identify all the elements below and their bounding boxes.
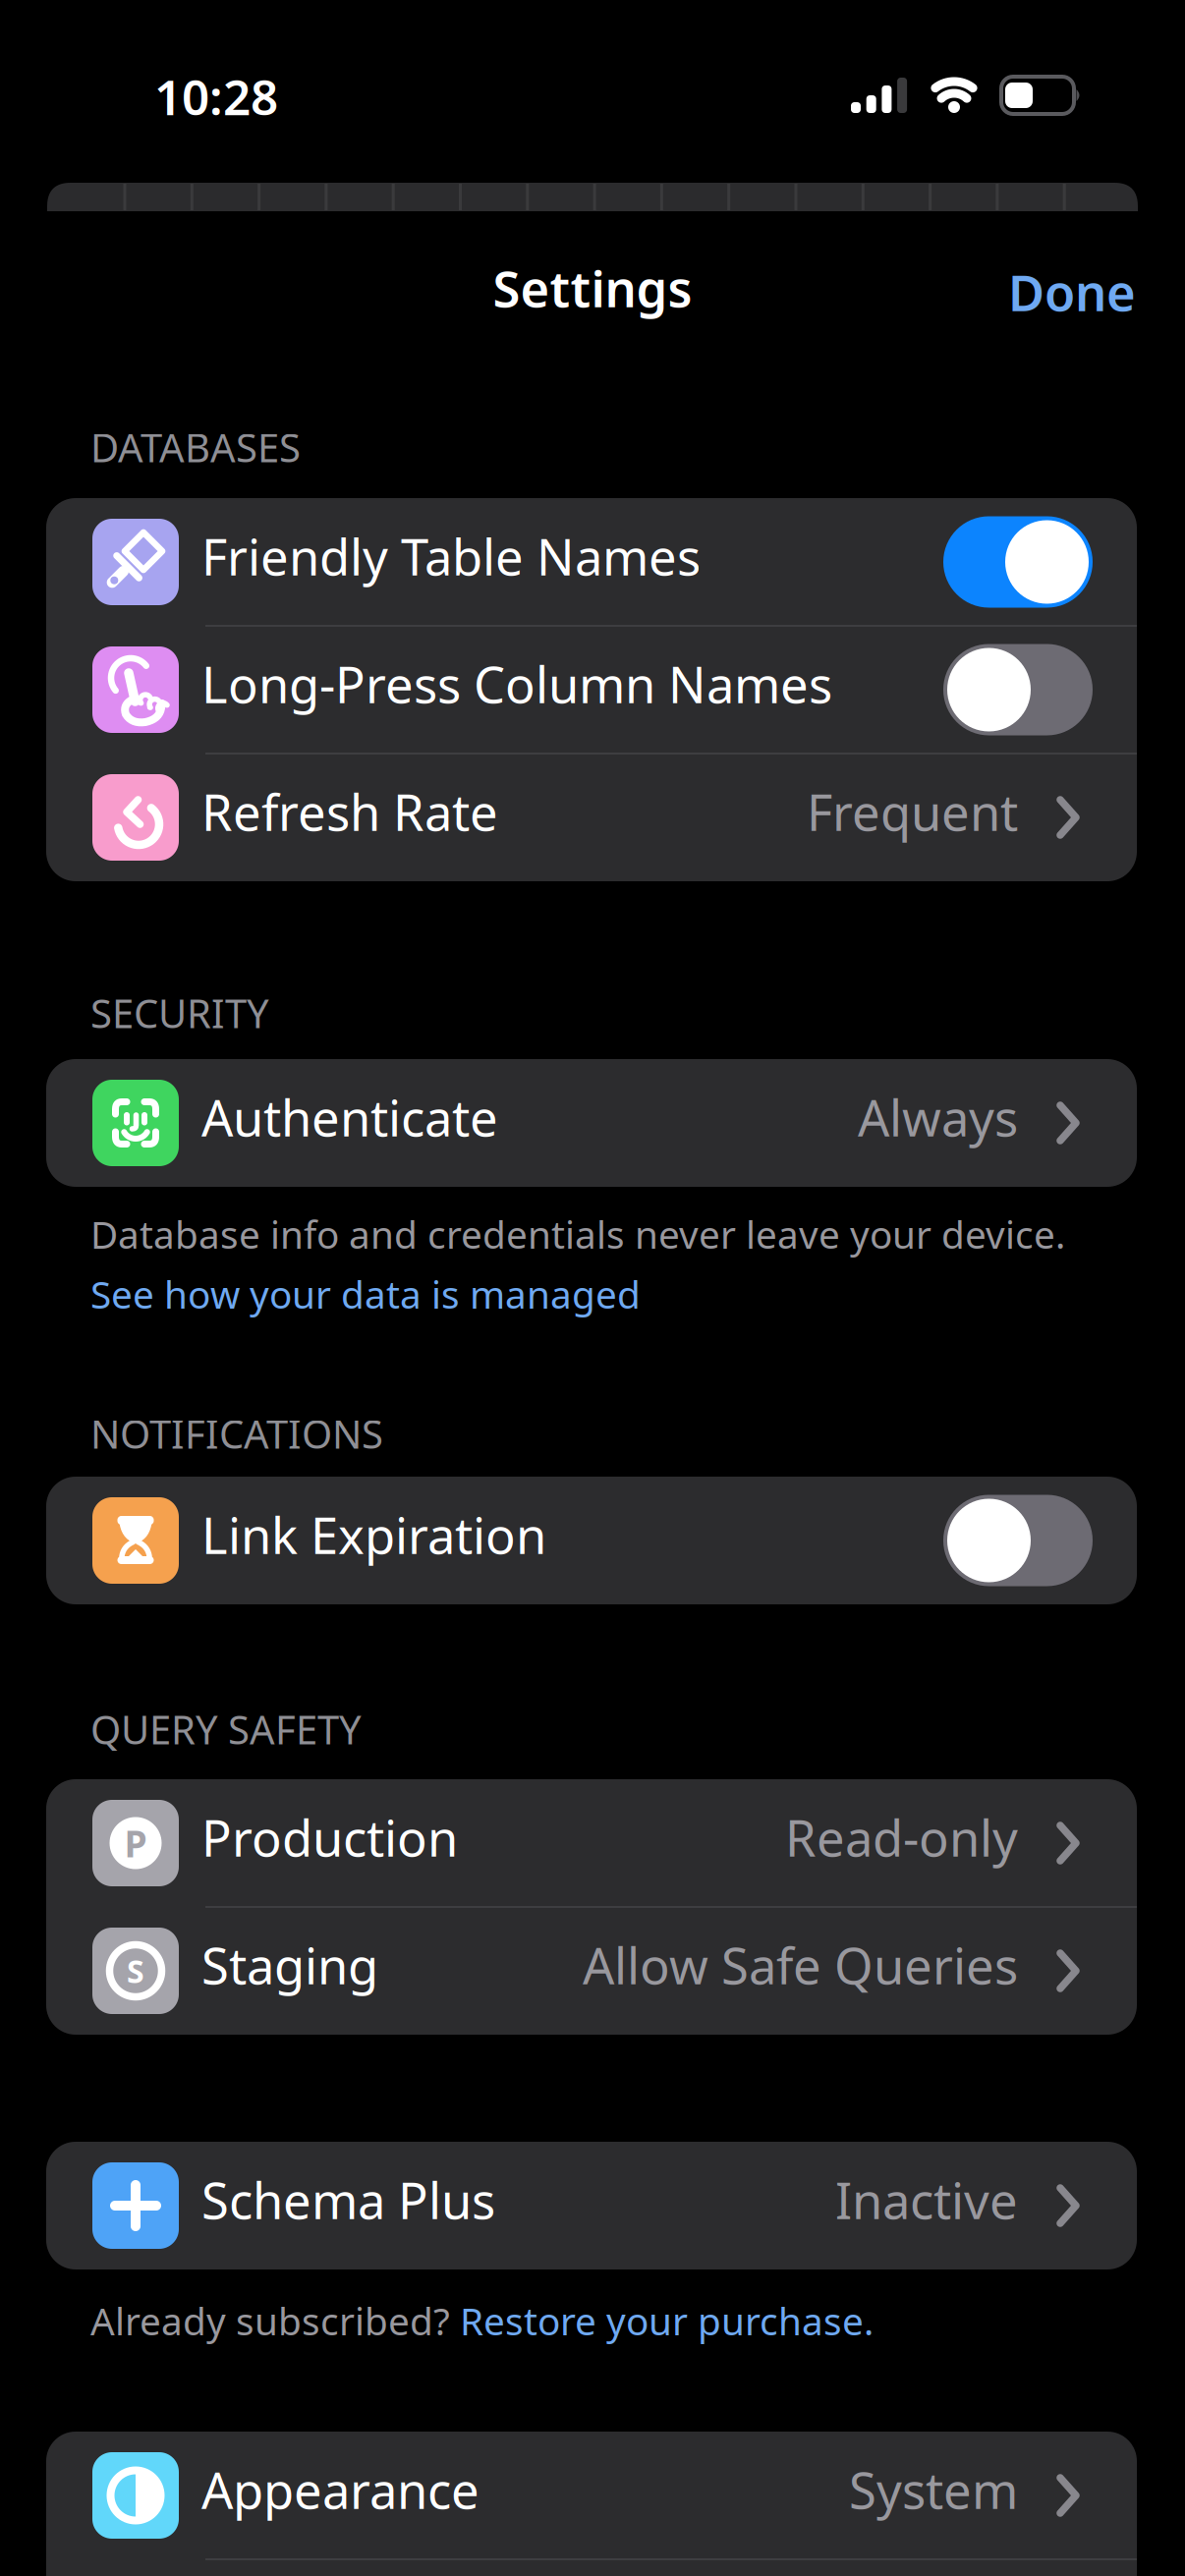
staticText: Authenticate bbox=[201, 1084, 498, 1150]
staticText: Done bbox=[1008, 259, 1136, 325]
staticText: SECURITY bbox=[90, 987, 269, 1039]
staticText: System bbox=[849, 2457, 1018, 2523]
button[interactable]: S bbox=[46, 1907, 1137, 2035]
button[interactable]: Long-Press Column Names bbox=[46, 626, 1137, 754]
staticText: Always bbox=[858, 1084, 1018, 1150]
staticText: Allow Safe Queries bbox=[583, 1932, 1018, 1998]
staticText: Frequent bbox=[807, 778, 1018, 845]
staticText: Database info and credentials never leav… bbox=[90, 1209, 1065, 1259]
button[interactable]: Refresh Rate bbox=[46, 754, 1137, 881]
staticText: Link Expiration bbox=[201, 1502, 546, 1568]
button[interactable]: Friendly Table Names bbox=[46, 498, 1137, 626]
staticText: Settings bbox=[493, 255, 692, 321]
button[interactable]: Link Expiration bbox=[46, 1477, 1137, 1604]
staticText: See how your data is managed bbox=[90, 1269, 641, 1319]
staticText: Staging bbox=[201, 1932, 378, 1998]
button[interactable]: P bbox=[46, 1779, 1137, 1907]
staticText: Appearance bbox=[201, 2457, 480, 2523]
button[interactable]: See how your data is managed bbox=[90, 1269, 641, 1319]
staticText: 10:28 bbox=[154, 64, 278, 128]
button[interactable]: Done bbox=[1008, 259, 1136, 325]
staticText: Production bbox=[201, 1804, 458, 1870]
staticText: Friendly Table Names bbox=[201, 523, 701, 589]
button[interactable]: Appearance bbox=[46, 2432, 1137, 2559]
button[interactable]: Authenticate bbox=[46, 1059, 1137, 1187]
staticText: Inactive bbox=[835, 2167, 1018, 2233]
staticText: Schema Plus bbox=[201, 2167, 495, 2233]
staticText: Read-only bbox=[785, 1804, 1018, 1870]
staticText: P bbox=[124, 1819, 147, 1867]
staticText: QUERY SAFETY bbox=[90, 1703, 362, 1755]
button[interactable]: Restore your purchase. bbox=[460, 2295, 874, 2346]
button[interactable]: Schema Plus bbox=[46, 2142, 1137, 2269]
staticText: Long-Press Column Names bbox=[201, 651, 832, 717]
staticText: NOTIFICATIONS bbox=[90, 1407, 383, 1459]
staticText: Already subscribed? bbox=[90, 2295, 460, 2346]
staticText: S bbox=[127, 1950, 144, 1992]
staticText: DATABASES bbox=[90, 421, 301, 473]
staticText: Restore your purchase. bbox=[460, 2295, 874, 2346]
staticText: Refresh Rate bbox=[201, 778, 498, 845]
